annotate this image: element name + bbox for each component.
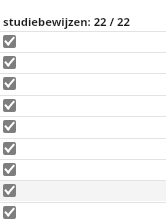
other: Checked: [3, 142, 16, 155]
button[interactable]: Checked: [0, 202, 166, 219]
other: Checked: [3, 99, 16, 112]
button[interactable]: Checked: [0, 180, 166, 201]
button[interactable]: Checked: [0, 138, 166, 159]
staticText: studiebewijzen: 22 / 22: [3, 14, 130, 29]
other: Checked: [3, 163, 16, 176]
button[interactable]: Checked: [0, 95, 166, 116]
other: Checked: [3, 56, 16, 69]
button[interactable]: Checked: [0, 73, 166, 94]
other: Checked: [3, 120, 16, 133]
other: Checked: [3, 184, 16, 197]
other: Checked: [3, 35, 16, 48]
button[interactable]: Checked: [0, 52, 166, 73]
button[interactable]: Checked: [0, 31, 166, 52]
other: Checked: [3, 206, 16, 219]
other: Checked: [3, 77, 16, 90]
button[interactable]: Checked: [0, 159, 166, 180]
button[interactable]: Checked: [0, 116, 166, 137]
